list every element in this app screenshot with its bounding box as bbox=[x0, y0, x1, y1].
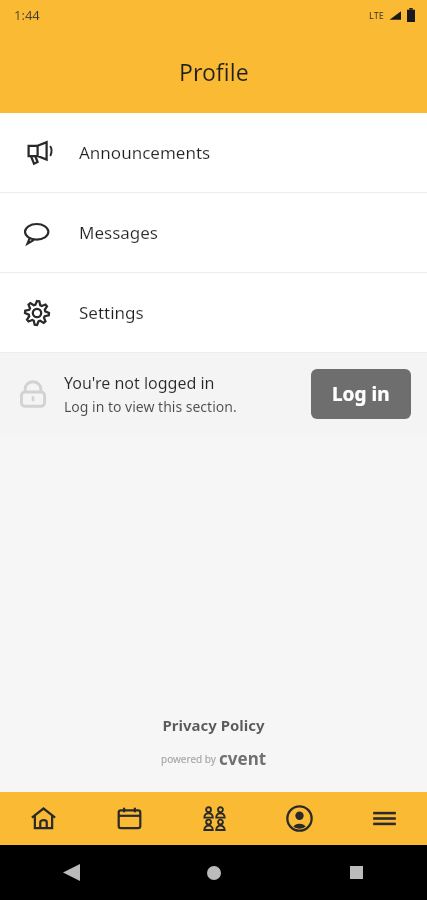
staticText: Profile bbox=[179, 56, 249, 87]
button[interactable]: Announcements bbox=[0, 113, 427, 192]
staticText: Announcements bbox=[79, 141, 211, 164]
staticText: Settings bbox=[79, 301, 144, 324]
button[interactable]: More bbox=[342, 792, 427, 845]
button[interactable]: Log in bbox=[311, 369, 411, 419]
staticText: You're not logged in bbox=[64, 372, 215, 394]
staticText: Messages bbox=[79, 221, 159, 244]
staticText: 1:44 bbox=[14, 6, 40, 24]
staticText: powered by bbox=[161, 752, 219, 766]
staticText: cvent bbox=[219, 747, 267, 770]
staticText: Log in to view this section. bbox=[64, 397, 237, 416]
button[interactable]: Privacy Policy bbox=[162, 715, 265, 735]
button[interactable]: Schedule bbox=[86, 792, 172, 845]
button[interactable]: Settings bbox=[0, 273, 427, 352]
button[interactable]: Home bbox=[0, 792, 86, 845]
staticText: Log in bbox=[332, 381, 390, 407]
button[interactable]: Profile bbox=[257, 792, 342, 845]
button[interactable]: Messages bbox=[0, 193, 427, 272]
staticText: LTE bbox=[369, 9, 384, 21]
button[interactable]: You're not logged in bbox=[0, 353, 427, 435]
button[interactable]: Attendees bbox=[172, 792, 257, 845]
